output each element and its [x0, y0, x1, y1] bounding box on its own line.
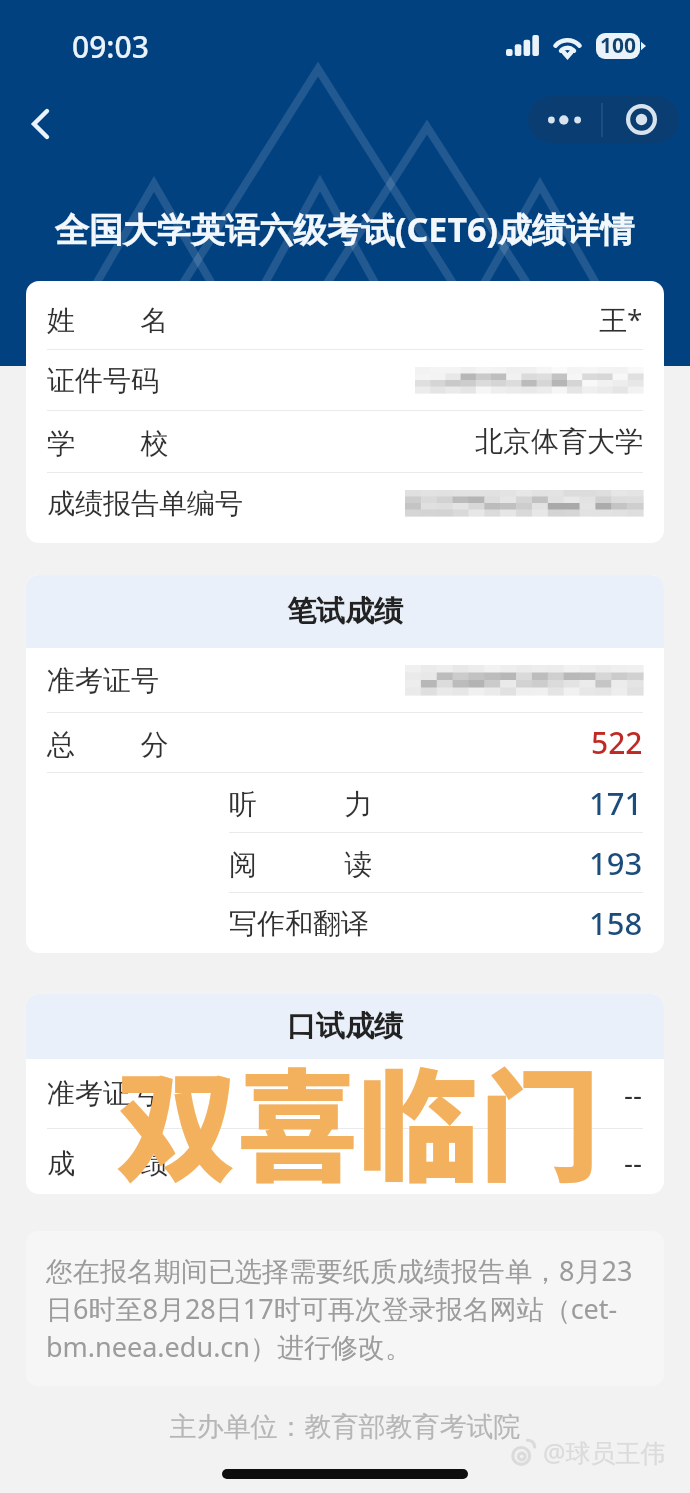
staticText: 学 校 [47, 423, 169, 461]
staticText: 笔试成绩 [287, 593, 403, 630]
staticText: 100 [600, 31, 637, 60]
staticText: 双喜临门 [116, 1031, 601, 1206]
staticText: 证件号码 [47, 363, 159, 398]
button[interactable]: 阅 读 [26, 833, 664, 892]
staticText: 写作和翻译 [229, 906, 369, 941]
staticText: 口试成绩 [287, 1008, 403, 1045]
staticText: -- [624, 1075, 643, 1113]
staticText: 522 [591, 722, 643, 763]
staticText: 193 [589, 842, 643, 884]
staticText: @球员王伟 [543, 1435, 666, 1469]
button[interactable]: 听 力 [26, 773, 664, 832]
button[interactable]: More options [528, 96, 601, 143]
staticText: 您在报名期间已选择需要纸质成绩报告单，8月23日6时至8月28日17时可再次登录… [46, 1252, 644, 1365]
staticText: 全国大学英语六级考试(CET6)成绩详情 [55, 206, 634, 252]
staticText: 成 绩 [47, 1143, 169, 1181]
staticText: 主办单位：教育部教育考试院 [0, 1410, 690, 1444]
staticText: 总 分 [47, 724, 169, 762]
staticText: -- [624, 1143, 643, 1181]
staticText: 158 [589, 902, 643, 944]
staticText: 王* [599, 300, 643, 338]
staticText: 姓 名 [47, 300, 169, 338]
button[interactable]: Back [10, 94, 70, 154]
staticText: 听 力 [229, 784, 373, 822]
button[interactable]: Close mini program [603, 96, 679, 143]
button[interactable]: 姓 名 [26, 289, 664, 349]
staticText: 171 [589, 782, 643, 824]
button[interactable]: 总 分 [26, 713, 664, 772]
staticText: 准考证号 [47, 663, 159, 698]
staticText: 准考证号 [47, 1076, 159, 1111]
button[interactable]: 准考证号 [26, 1059, 664, 1128]
button[interactable]: 成 绩 [26, 1129, 664, 1194]
staticText: 成绩报告单编号 [47, 486, 243, 521]
button[interactable]: 准考证号 [26, 648, 664, 712]
staticText: 09:03 [72, 26, 149, 67]
staticText: 阅 读 [229, 844, 373, 882]
button[interactable]: 写作和翻译 [26, 893, 664, 953]
button[interactable]: 证件号码 [26, 350, 664, 410]
button[interactable]: 学 校 [26, 411, 664, 472]
staticText: 北京体育大学 [475, 424, 643, 459]
button[interactable]: 成绩报告单编号 [26, 473, 664, 533]
